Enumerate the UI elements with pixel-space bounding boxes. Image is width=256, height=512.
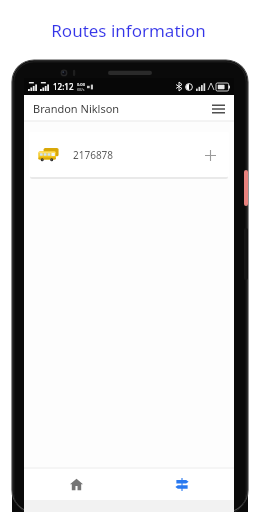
staticText: Routes information	[51, 19, 206, 42]
staticText: KB/s	[77, 87, 85, 92]
button[interactable]: Home	[24, 469, 129, 500]
button[interactable]: Routes	[129, 469, 234, 500]
staticText: 12:12	[53, 81, 74, 92]
staticText: 0.00	[77, 82, 85, 87]
staticText: Brandon Niklson	[33, 101, 120, 116]
button[interactable]: 2176878	[29, 132, 229, 177]
staticText: 2176878	[73, 148, 114, 162]
button[interactable]: Menu	[206, 97, 230, 121]
button[interactable]: Add route	[199, 144, 221, 166]
